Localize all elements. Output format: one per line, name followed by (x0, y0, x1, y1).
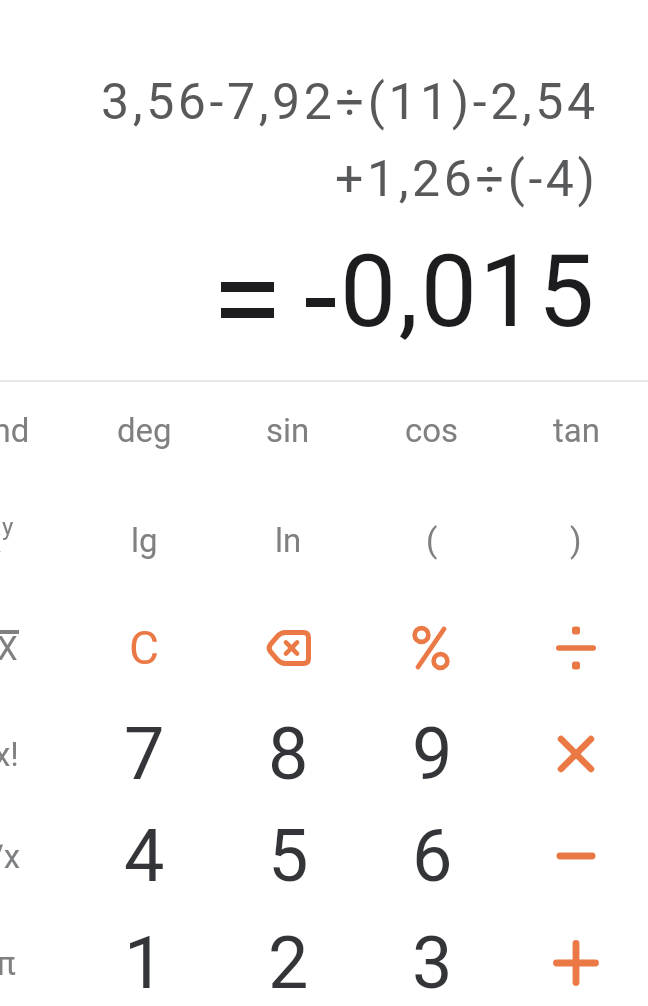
staticText: x! (0, 735, 19, 774)
staticText: deg (117, 411, 172, 450)
button[interactable]: tan (516, 381, 636, 479)
button[interactable]: x (0, 491, 59, 589)
button[interactable]: deg (84, 381, 204, 479)
staticText: cos (405, 411, 459, 450)
staticText: 9 (412, 712, 453, 796)
button[interactable]: 2 (228, 914, 348, 1006)
button[interactable]: lg (84, 491, 204, 589)
staticText: 3,56-7,92÷(11)-2,54 (101, 73, 599, 132)
staticText: 3 (412, 921, 453, 1005)
button[interactable]: cos (372, 381, 492, 479)
staticText: 0,015 (340, 233, 597, 350)
staticText: 7 (124, 712, 165, 796)
staticText: ln (275, 521, 302, 560)
button[interactable]: x! (0, 705, 66, 803)
staticText: 5 (268, 814, 309, 898)
staticText: lg (131, 521, 158, 560)
staticText: 6 (412, 814, 453, 898)
staticText: 2 (268, 921, 309, 1005)
button[interactable]: C (84, 599, 204, 697)
button[interactable]: X (0, 599, 67, 697)
staticText: x (0, 521, 2, 560)
staticText: 8 (268, 712, 309, 796)
button[interactable]: ( (372, 491, 492, 589)
button[interactable]: 5 (228, 807, 348, 905)
staticText: tan (553, 411, 600, 450)
button[interactable]: 8 (228, 705, 348, 803)
button[interactable] (516, 914, 636, 1006)
staticText: C (129, 621, 159, 675)
button[interactable]: 6 (372, 807, 492, 905)
staticText: ( (426, 521, 438, 560)
button[interactable]: 3 (372, 914, 492, 1006)
staticText: y (2, 513, 14, 541)
button[interactable]: 4 (84, 807, 204, 905)
staticText: 4 (124, 814, 165, 898)
button[interactable]: π (0, 914, 66, 1006)
button[interactable]: ) (516, 491, 636, 589)
button[interactable]: 1 (84, 914, 204, 1006)
button[interactable] (516, 807, 636, 905)
staticText: 2nd (0, 411, 30, 450)
button[interactable] (372, 599, 492, 697)
button[interactable]: 2nd (0, 381, 62, 479)
staticText: X (0, 629, 18, 668)
staticText: sin (266, 411, 310, 450)
button[interactable]: sin (228, 381, 348, 479)
button[interactable] (228, 599, 348, 697)
staticText: ) (570, 521, 582, 560)
button[interactable]: 9 (372, 705, 492, 803)
button[interactable] (516, 705, 636, 803)
staticText: 1 (124, 921, 165, 1005)
button[interactable]: 7 (84, 705, 204, 803)
staticText: π (0, 944, 16, 983)
button[interactable] (516, 599, 636, 697)
staticText: +1,26÷(-4) (335, 150, 599, 209)
button[interactable]: √x (0, 807, 62, 905)
staticText: √x (0, 837, 21, 876)
button[interactable]: ln (228, 491, 348, 589)
